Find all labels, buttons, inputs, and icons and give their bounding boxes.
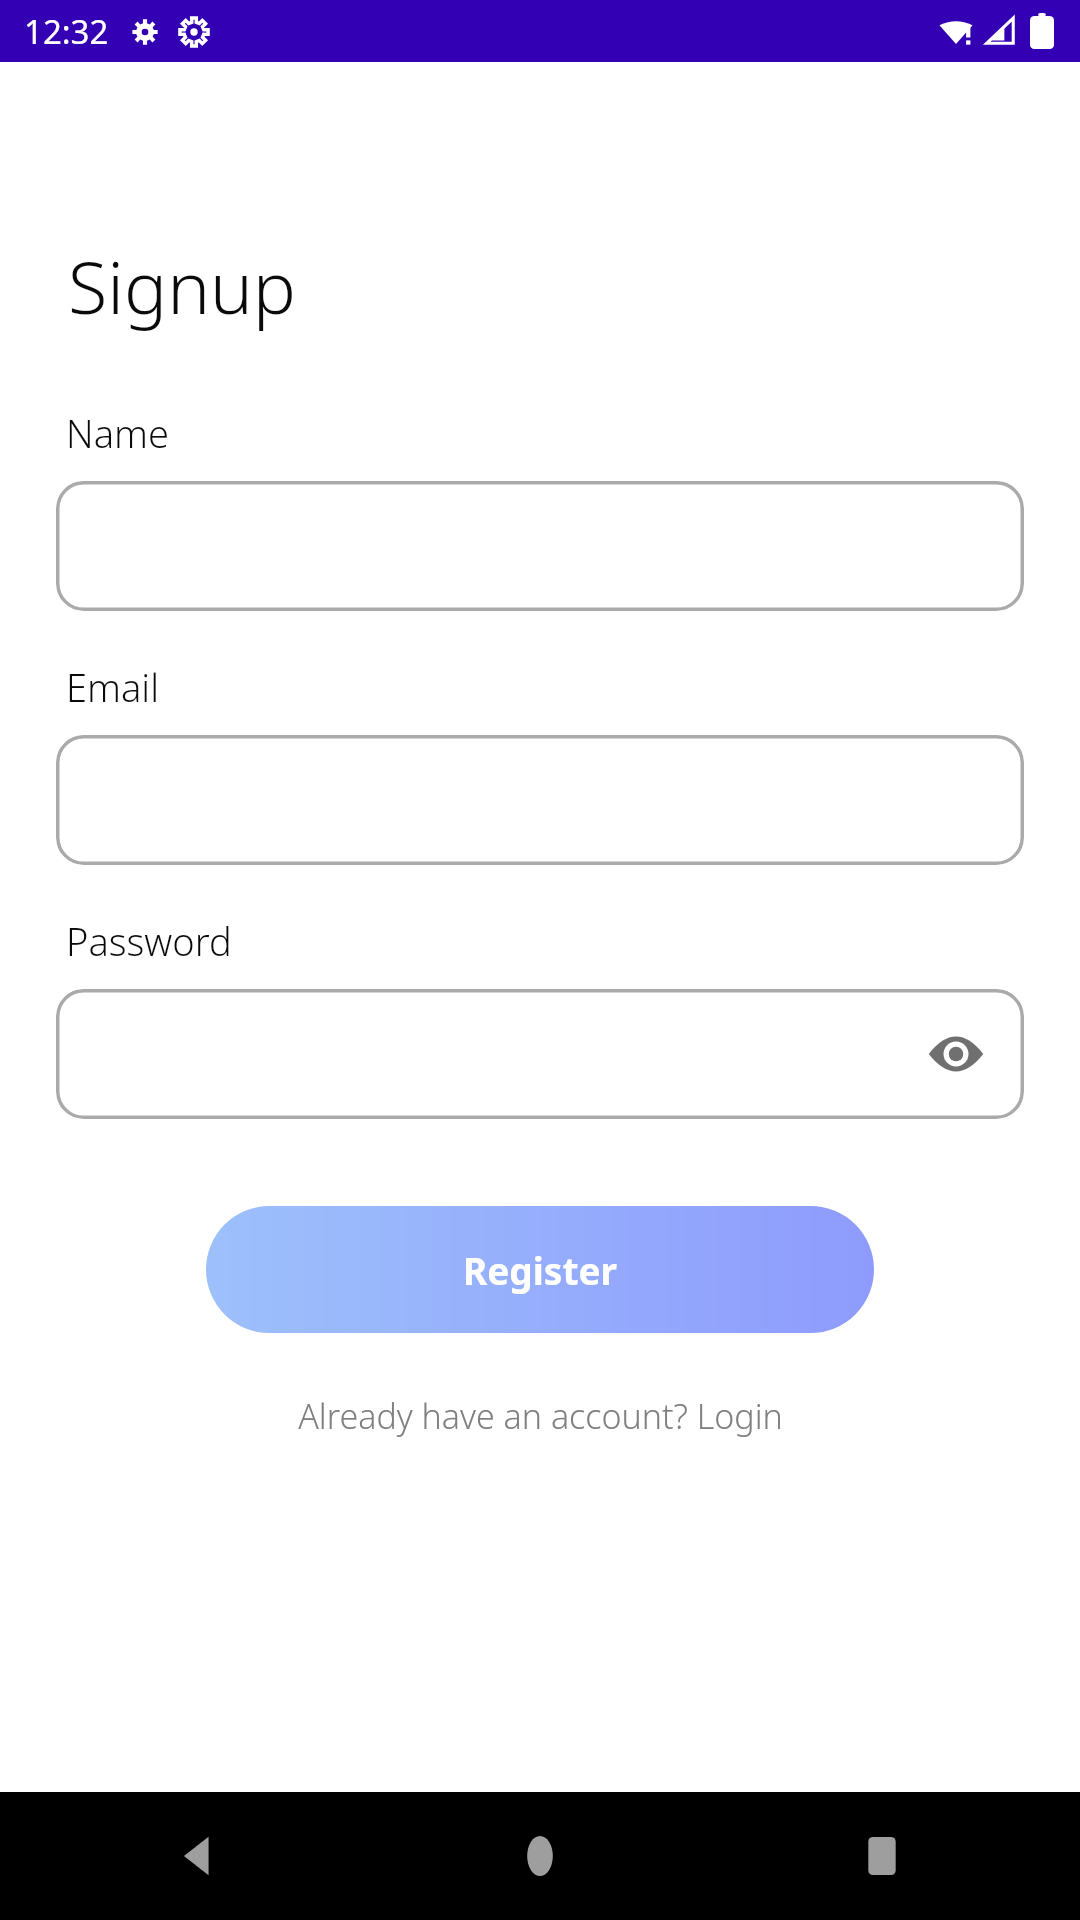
staticText: Register [463,1245,618,1295]
button[interactable]: Recent apps [834,1808,930,1904]
button[interactable]: Back [150,1808,246,1904]
staticText: Password [66,915,232,967]
button[interactable]: Already have an account? Login [0,1393,1080,1439]
staticText: Name [66,407,169,459]
button[interactable]: Show password [56,989,1024,1119]
button[interactable]: Show password [920,1018,992,1090]
button[interactable]: Home [492,1808,588,1904]
staticText: 12:32 [24,9,109,54]
staticText: Signup [68,237,296,335]
button[interactable] [56,481,1024,611]
button[interactable] [56,735,1024,865]
staticText: Email [66,661,159,713]
staticText: Already have an account? Login [298,1393,783,1439]
button[interactable]: Register [206,1206,874,1333]
